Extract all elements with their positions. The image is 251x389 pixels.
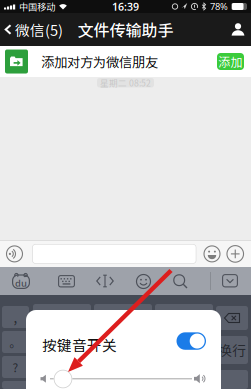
staticText: 文件传输助手 — [77, 18, 173, 41]
staticText: 微信(5) — [15, 19, 63, 40]
button[interactable]: 收起键盘 — [222, 274, 238, 287]
button[interactable]: 符号 — [216, 370, 248, 389]
button[interactable]: 更多功能 — [220, 245, 251, 263]
button[interactable]: 。 — [2, 331, 29, 353]
staticText: 16:39 — [112, 0, 139, 14]
button[interactable]: 表情 — [136, 274, 151, 289]
staticText: , — [13, 307, 17, 327]
button[interactable]: 语音输入 — [6, 245, 23, 262]
button[interactable]: 按键 — [33, 304, 91, 328]
button[interactable]: 表情 — [203, 245, 220, 262]
button[interactable]: 按键 — [155, 304, 213, 328]
staticText: 添加 — [218, 53, 242, 70]
button[interactable]: , — [2, 306, 29, 328]
staticText: 添加对方为微信朋友 — [41, 52, 158, 71]
button[interactable]: 按键音开关 — [176, 332, 206, 350]
button[interactable]: 光标移动 — [96, 274, 114, 287]
staticText: 中国移动 — [19, 0, 55, 13]
staticText: 换行 — [218, 340, 246, 360]
button[interactable]: 微信(5) — [0, 19, 63, 40]
button[interactable]: 换行 — [216, 336, 248, 364]
staticText: ? — [12, 358, 18, 376]
button[interactable]: 删除 — [216, 306, 248, 330]
button[interactable]: 按键 — [2, 381, 29, 389]
button[interactable]: 搜索 — [173, 274, 188, 289]
staticText: 星期二 08:52 — [100, 76, 151, 89]
button[interactable]: 输入框 — [23, 244, 203, 264]
button[interactable]: 添加 — [217, 53, 244, 70]
staticText: 78% — [210, 0, 228, 13]
button[interactable]: 音量 — [26, 370, 208, 389]
button[interactable]: 联系人资料 — [231, 23, 251, 36]
staticText: du — [15, 277, 27, 289]
button[interactable]: 输入法菜单 — [12, 272, 30, 290]
button[interactable]: 键盘切换 — [58, 275, 75, 287]
staticText: 按键音开关 — [42, 334, 117, 355]
staticText: 。 — [9, 333, 21, 351]
button[interactable]: 按键 — [94, 304, 152, 328]
button[interactable]: ? — [2, 356, 29, 378]
